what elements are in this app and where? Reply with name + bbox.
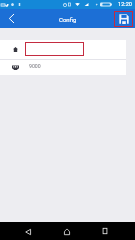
staticText: 12:20	[118, 1, 132, 8]
staticText: 9000	[29, 63, 41, 69]
button[interactable]: Back	[0, 9, 20, 28]
button[interactable]: Home	[58, 222, 75, 239]
button[interactable]	[0, 40, 126, 59]
button[interactable]: Back	[19, 222, 36, 239]
button[interactable]: 9000	[0, 60, 126, 75]
button[interactable]: Save	[114, 11, 133, 27]
button[interactable]: Recent apps	[96, 222, 113, 239]
staticText: Config	[59, 16, 77, 23]
